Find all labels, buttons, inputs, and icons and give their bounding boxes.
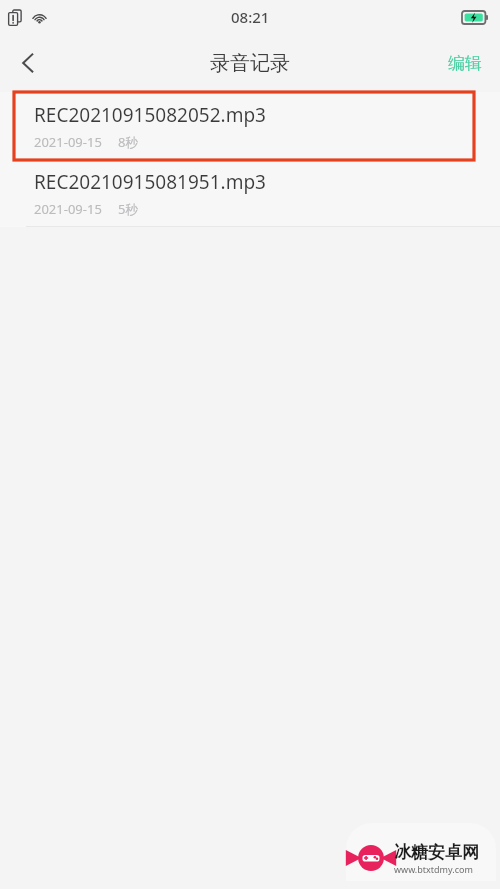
staticText: 2021-09-15 [34,200,102,218]
button[interactable]: REC20210915082052.mp3 [0,92,500,160]
button[interactable]: Back [0,35,56,91]
staticText: 08:21 [231,7,270,27]
button[interactable]: REC20210915081951.mp3 [0,160,500,227]
staticText: www.btxtdmy.com [394,863,473,875]
staticText: 录音记录 [210,51,290,76]
staticText: 编辑 [448,53,482,74]
staticText: 冰糖安卓网 [394,842,479,863]
staticText: REC20210915082052.mp3 [34,102,266,128]
staticText: 5秒 [118,200,139,218]
button[interactable]: 编辑 [430,43,500,84]
staticText: 2021-09-15 [34,133,102,151]
staticText: REC20210915081951.mp3 [34,169,266,195]
staticText: 8秒 [118,133,139,151]
